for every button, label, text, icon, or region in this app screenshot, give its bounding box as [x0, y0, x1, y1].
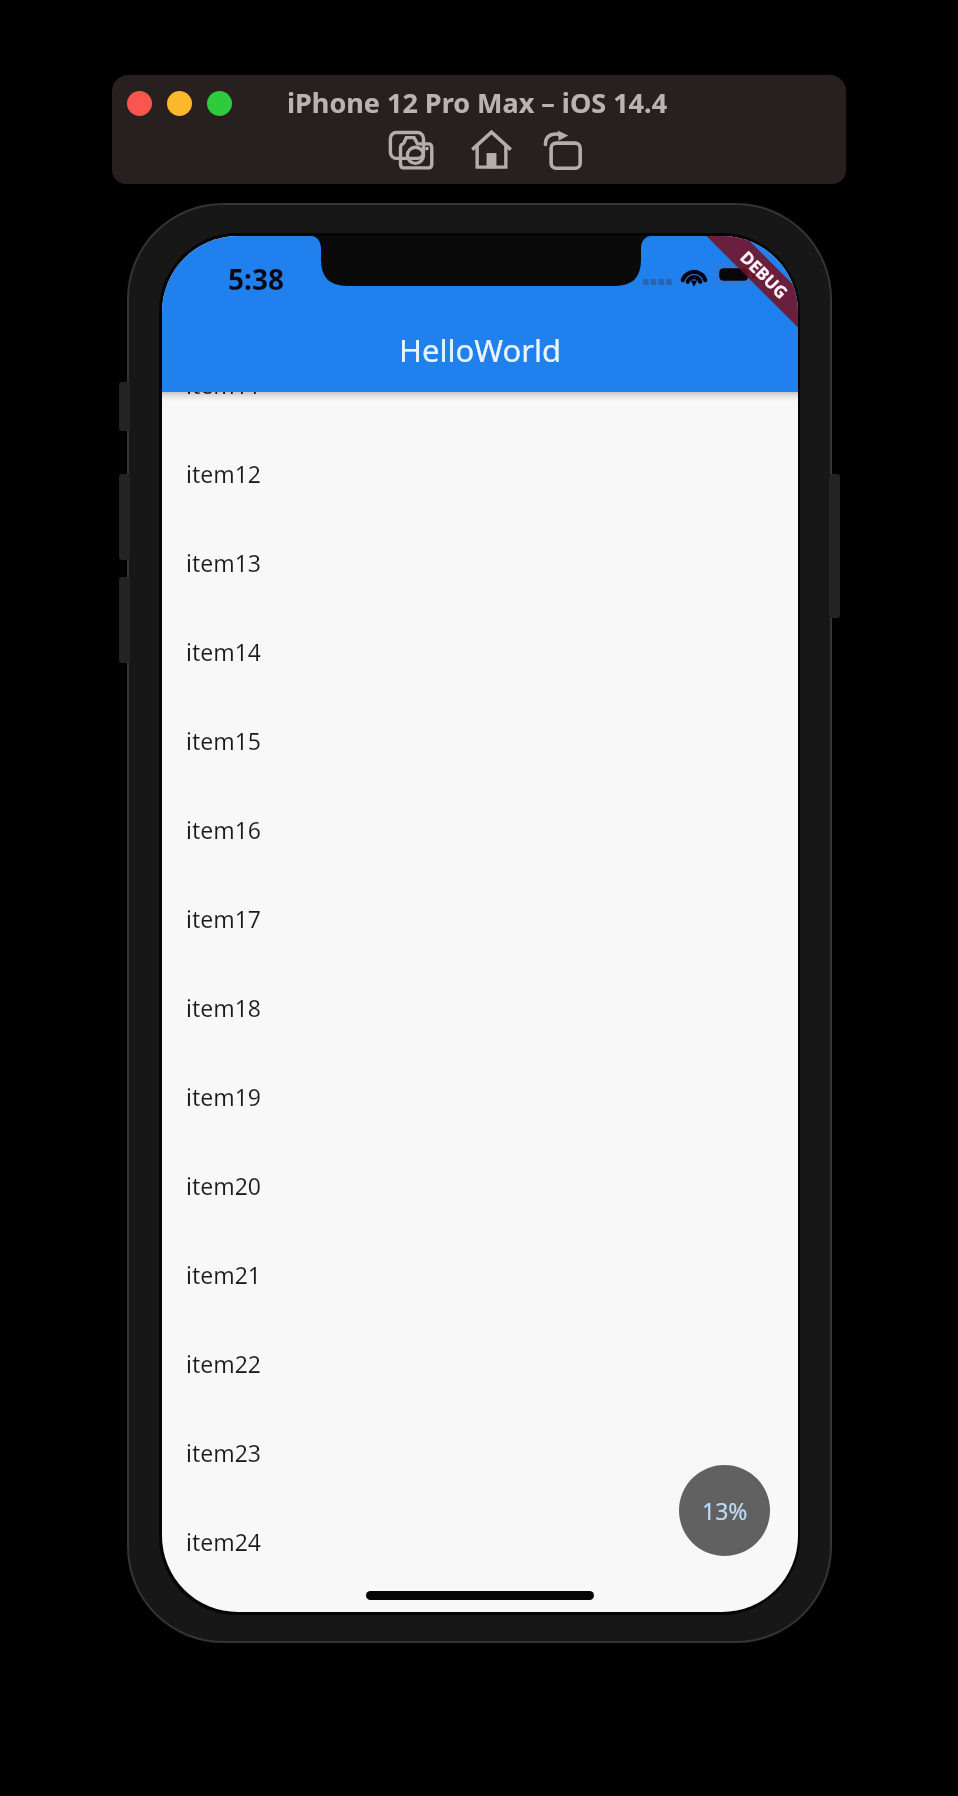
staticText: 5:38 [228, 260, 284, 298]
staticText: iPhone 12 Pro Max – iOS 14.4 [287, 84, 668, 121]
staticText: item24 [186, 1526, 262, 1557]
button[interactable]: item12 [162, 429, 798, 518]
staticText: item11 [186, 369, 262, 400]
staticText: item20 [186, 1170, 262, 1201]
button[interactable]: Minimize [167, 91, 192, 116]
staticText: item17 [186, 903, 262, 934]
button[interactable]: item21 [162, 1230, 798, 1319]
staticText: item14 [186, 636, 262, 667]
staticText: item18 [186, 992, 262, 1023]
button[interactable]: Rotate [541, 128, 585, 169]
button[interactable]: item19 [162, 1052, 798, 1141]
button[interactable]: item23 [162, 1408, 798, 1497]
button[interactable]: item13 [162, 518, 798, 607]
button[interactable]: Screenshot [389, 131, 435, 169]
staticText: 13% [702, 1495, 748, 1526]
staticText: item19 [186, 1081, 262, 1112]
staticText: item15 [186, 725, 262, 756]
button[interactable]: item20 [162, 1141, 798, 1230]
button[interactable]: item22 [162, 1319, 798, 1408]
staticText: item12 [186, 458, 262, 489]
button[interactable]: Maximize [207, 91, 232, 116]
button[interactable]: item24 [162, 1497, 798, 1586]
button[interactable]: item17 [162, 874, 798, 963]
button[interactable]: item14 [162, 607, 798, 696]
staticText: item21 [186, 1259, 262, 1290]
staticText: item16 [186, 814, 262, 845]
button[interactable]: item11 [162, 340, 798, 429]
button[interactable]: Close [127, 91, 152, 116]
staticText: item13 [186, 547, 262, 578]
button[interactable]: item18 [162, 963, 798, 1052]
button[interactable]: Home [471, 131, 512, 169]
button[interactable]: item16 [162, 785, 798, 874]
staticText: DEBUG [735, 246, 793, 304]
staticText: item22 [186, 1348, 262, 1379]
button[interactable]: item15 [162, 696, 798, 785]
staticText: HelloWorld [399, 329, 562, 371]
staticText: item23 [186, 1437, 262, 1468]
button[interactable]: 13% [679, 1465, 770, 1556]
